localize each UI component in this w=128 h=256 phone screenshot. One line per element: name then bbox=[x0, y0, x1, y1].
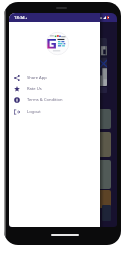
staticText: Rate Us bbox=[27, 86, 42, 92]
button[interactable]: Logout bbox=[9, 106, 100, 117]
button[interactable]: Rate Us bbox=[9, 83, 100, 94]
button[interactable]: Terms & Condition bbox=[9, 94, 100, 105]
staticText: Share App bbox=[27, 75, 47, 81]
staticText: 18:34 bbox=[14, 15, 25, 21]
staticText: Logout bbox=[27, 109, 41, 115]
button[interactable]: Share App bbox=[9, 72, 100, 83]
staticText: Terms & Condition bbox=[27, 97, 63, 103]
